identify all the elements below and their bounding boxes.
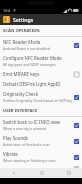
button[interactable]: Show Hexadecimal Values (0, 165, 82, 168)
staticText: All tag types and NDEF messages (3, 62, 56, 67)
staticText: Originality Check (3, 91, 39, 97)
staticText: Verifies Originality Check based on NXP … (3, 98, 72, 103)
staticText: USER INTERFACE (3, 108, 38, 114)
staticText: When starting or finishing a scan (3, 158, 56, 163)
button[interactable]: Configure NFC Reader Mode (0, 53, 82, 69)
staticText: Configure NFC Reader Mode (3, 55, 62, 61)
staticText: NFC Reader Mode (3, 39, 41, 45)
staticText: When a new tag is scanned (3, 126, 47, 131)
staticText: Settings (13, 16, 34, 23)
button[interactable]: Back (0, 168, 28, 178)
button[interactable]: Default DESFire Light AppID (0, 79, 82, 89)
button[interactable]: Vibrate (0, 149, 82, 165)
button[interactable]: Home (28, 168, 55, 178)
button[interactable]: Switch back to IC INFO view (0, 117, 82, 133)
button[interactable]: Emit MIFARE keys (0, 69, 82, 79)
button[interactable]: App icon (3, 16, 10, 23)
staticText: SCAN OPERATION (3, 28, 40, 34)
staticText: Android Beam is not disabled (3, 46, 50, 51)
button[interactable]: Originality Check (0, 89, 82, 105)
staticText: Active start or finished a scan (3, 142, 50, 147)
staticText: 12:4 (3, 8, 11, 13)
staticText: Switch back to IC INFO view (3, 119, 60, 125)
staticText: Vibrate (3, 151, 18, 157)
button[interactable]: Play Sounds (0, 133, 82, 149)
staticText: Default DESFire Light AppID (3, 81, 61, 87)
staticText: Emit MIFARE keys (3, 71, 40, 77)
button[interactable]: NFC Reader Mode (0, 37, 82, 53)
staticText: Play Sounds (3, 135, 28, 141)
button[interactable]: Recents (55, 168, 82, 178)
